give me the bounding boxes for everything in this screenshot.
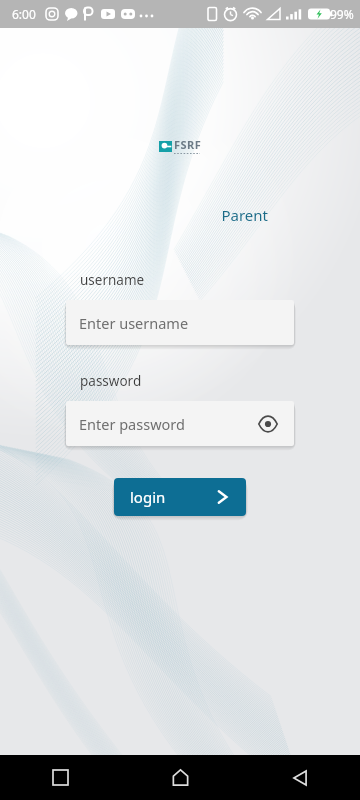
button[interactable]: Enter username <box>66 300 294 345</box>
button[interactable]: Recents <box>0 755 120 800</box>
staticText: password <box>80 372 142 390</box>
button[interactable]: Back <box>240 755 360 800</box>
staticText: 99% <box>330 6 354 22</box>
staticText: username <box>80 271 145 289</box>
staticText: login <box>130 487 166 507</box>
staticText: Enter username <box>79 313 189 333</box>
staticText: FSRF <box>174 137 202 152</box>
staticText: 6:00 <box>12 6 36 22</box>
staticText: Enter password <box>79 414 185 434</box>
button[interactable]: Home <box>120 755 240 800</box>
button[interactable]: login <box>114 478 246 516</box>
button[interactable]: Show password <box>256 412 280 436</box>
staticText: Parent <box>221 205 268 225</box>
button[interactable]: Enter password <box>66 401 294 446</box>
